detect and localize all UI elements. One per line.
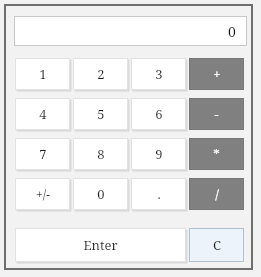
staticText: 9: [155, 145, 163, 163]
staticText: 6: [155, 105, 163, 123]
staticText: 0: [228, 22, 236, 41]
button[interactable]: 6: [131, 98, 186, 130]
button[interactable]: C: [189, 228, 244, 262]
staticText: /: [215, 185, 219, 203]
button[interactable]: *: [189, 138, 244, 170]
button[interactable]: Enter: [15, 228, 186, 262]
button[interactable]: +/-: [15, 178, 70, 210]
staticText: 5: [97, 105, 105, 123]
button[interactable]: 8: [73, 138, 128, 170]
button[interactable]: 0: [14, 16, 247, 46]
button[interactable]: 9: [131, 138, 186, 170]
button[interactable]: 0: [73, 178, 128, 210]
button[interactable]: 7: [15, 138, 70, 170]
staticText: 4: [39, 105, 47, 123]
staticText: .: [157, 185, 161, 203]
staticText: +: [213, 65, 221, 83]
staticText: 2: [97, 65, 105, 83]
staticText: 7: [39, 145, 47, 163]
staticText: Enter: [83, 236, 118, 254]
staticText: *: [213, 145, 220, 163]
staticText: +/-: [36, 186, 50, 202]
staticText: 1: [39, 65, 47, 83]
button[interactable]: 3: [131, 58, 186, 90]
staticText: -: [214, 105, 219, 123]
button[interactable]: -: [189, 98, 244, 130]
button[interactable]: +: [189, 58, 244, 90]
staticText: C: [213, 236, 221, 254]
button[interactable]: /: [189, 178, 244, 210]
button[interactable]: 2: [73, 58, 128, 90]
button[interactable]: 5: [73, 98, 128, 130]
staticText: 3: [155, 65, 163, 83]
staticText: 8: [97, 145, 105, 163]
button[interactable]: 1: [15, 58, 70, 90]
button[interactable]: 4: [15, 98, 70, 130]
button[interactable]: .: [131, 178, 186, 210]
staticText: 0: [97, 185, 105, 203]
